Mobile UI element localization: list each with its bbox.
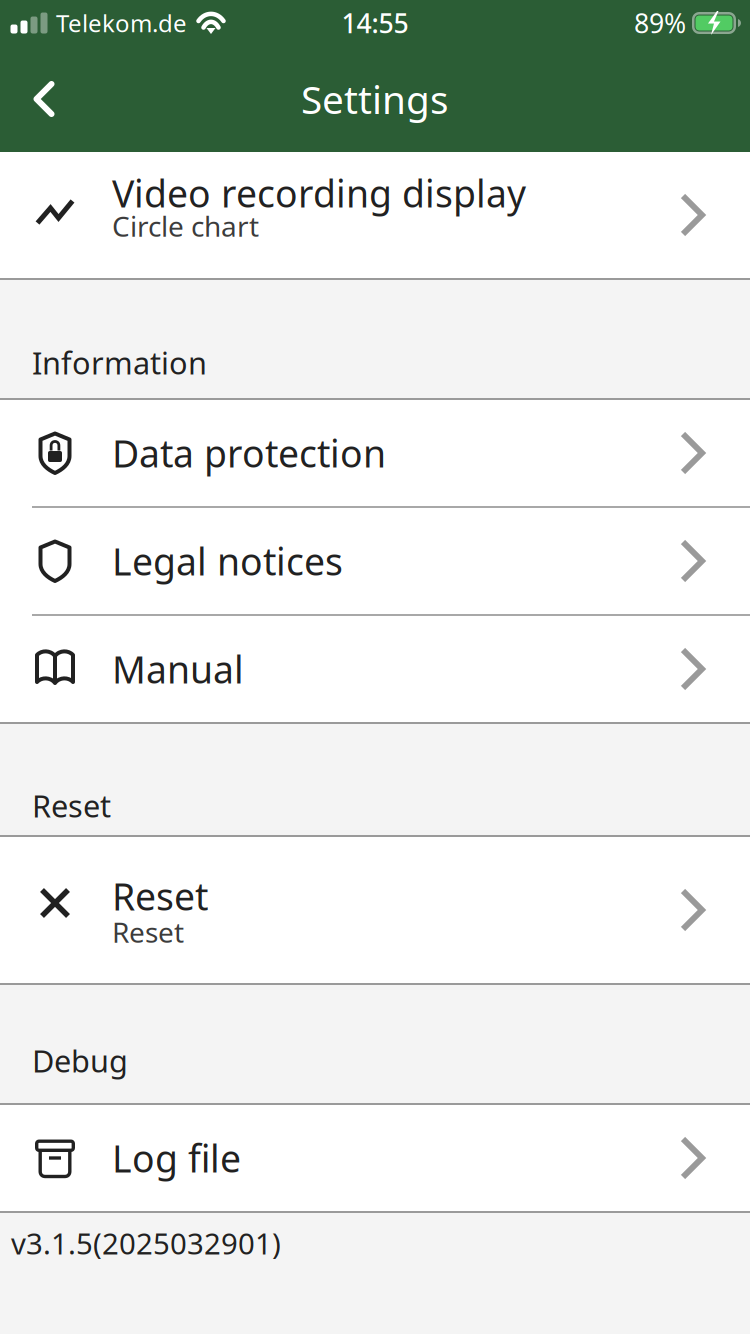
staticText: Reset [112,871,208,921]
staticText: Debug [32,1040,128,1081]
staticText: Legal notices [112,536,343,586]
staticText: Telekom.de [56,7,187,39]
button[interactable]: Manual [0,616,750,722]
staticText: Reset [112,913,184,951]
staticText: 14:55 [341,5,408,41]
staticText: Settings [301,73,449,125]
button[interactable]: Legal notices [0,508,750,614]
staticText: Data protection [112,428,386,478]
button[interactable]: Log file [0,1105,750,1211]
button[interactable]: Reset [0,837,750,983]
button[interactable]: Back [0,46,88,152]
staticText: Reset [32,785,111,826]
button[interactable]: Video recording display [0,152,750,278]
staticText: 89% [634,5,686,41]
staticText: Video recording display [112,168,526,218]
button[interactable]: Data protection [0,400,750,506]
staticText: Circle chart [112,207,259,245]
staticText: Manual [112,644,244,694]
staticText: Information [32,342,207,383]
staticText: Log file [112,1133,241,1183]
staticText: v3.1.5(2025032901) [11,1223,281,1262]
